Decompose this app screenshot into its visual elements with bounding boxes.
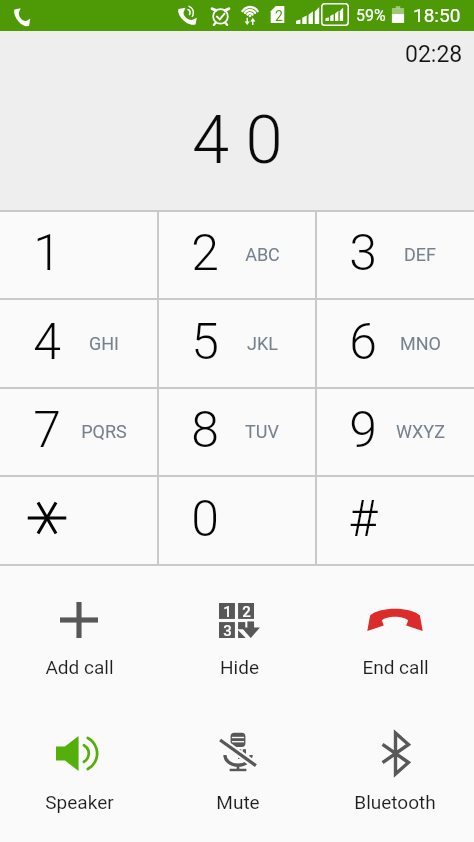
staticText: 7 — [33, 401, 61, 460]
button[interactable]: Mute — [160, 709, 316, 809]
staticText: MNO — [400, 333, 441, 354]
button[interactable]: 9 — [316, 387, 474, 476]
staticText: 1 — [223, 603, 232, 619]
other: Ongoing call — [14, 6, 32, 26]
staticText: 2 — [191, 224, 219, 283]
staticText: Add call — [45, 656, 114, 678]
staticText: PQRS — [81, 421, 127, 442]
button[interactable]: 6 — [316, 299, 474, 388]
button[interactable]: 8 — [158, 387, 316, 476]
staticText: 3 — [223, 622, 232, 638]
button[interactable]: 0 — [158, 476, 316, 565]
staticText: JKL — [247, 333, 278, 354]
staticText: 4 0 — [192, 101, 283, 180]
staticText: 4 — [33, 313, 61, 372]
staticText: 59% — [356, 6, 386, 25]
button[interactable]: Star — [0, 476, 158, 565]
staticText: 02:28 — [405, 41, 463, 68]
button[interactable]: End call — [317, 574, 473, 674]
staticText: 5 — [191, 313, 219, 372]
staticText: Bluetooth — [354, 791, 436, 813]
staticText: 6 — [349, 313, 377, 372]
other: Star — [29, 500, 65, 536]
staticText: 2 — [242, 603, 251, 619]
staticText: WXYZ — [396, 421, 445, 442]
button[interactable]: 3 — [316, 210, 474, 299]
staticText: End call — [362, 656, 429, 678]
button[interactable]: Speaker — [1, 709, 157, 809]
staticText: DEF — [404, 244, 436, 265]
staticText: # — [348, 490, 378, 549]
staticText: 1 — [33, 224, 61, 283]
staticText: 2 — [275, 8, 283, 24]
staticText: 8 — [191, 401, 219, 460]
button[interactable]: Bluetooth — [317, 709, 473, 809]
button[interactable]: # — [316, 476, 474, 565]
button[interactable]: Add call — [1, 576, 157, 676]
button[interactable]: 2 — [158, 210, 316, 299]
button[interactable]: 4 — [0, 299, 158, 388]
staticText: TUV — [245, 421, 279, 442]
staticText: Hide — [220, 656, 259, 678]
staticText: Mute — [216, 791, 260, 813]
staticText: 3 — [349, 224, 377, 283]
button[interactable]: 1 — [0, 210, 158, 299]
staticText: GHI — [89, 333, 119, 354]
staticText: ABC — [245, 244, 280, 265]
staticText: 9 — [349, 401, 377, 460]
button[interactable]: 1 — [161, 576, 317, 676]
button[interactable]: 5 — [158, 299, 316, 388]
button[interactable]: 7 — [0, 387, 158, 476]
staticText: 18:50 — [413, 4, 461, 26]
staticText: 0 — [191, 490, 219, 549]
staticText: Speaker — [45, 791, 114, 813]
